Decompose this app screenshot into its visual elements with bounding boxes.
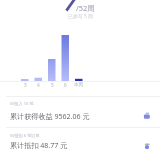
other: Earnings detail xyxy=(143,111,153,121)
staticText: 累计获得收益 9562.06 元 xyxy=(10,111,90,121)
staticText: 5 xyxy=(51,82,54,88)
other: Discount detail xyxy=(143,142,153,152)
staticText: 4 xyxy=(37,82,40,88)
staticText: 累计抵扣 48.77 元 xyxy=(10,140,68,150)
button[interactable]: 已投入 13 笔 xyxy=(0,96,160,127)
staticText: 已抵扣 6 笔订单 xyxy=(10,133,40,139)
staticText: 6 xyxy=(64,82,67,88)
button[interactable]: 已抵扣 6 笔订单 xyxy=(0,127,160,158)
staticText: 已投入 13 笔 xyxy=(10,101,34,107)
staticText: /52周 xyxy=(76,3,95,13)
staticText: 本周 xyxy=(74,82,84,88)
staticText: 已参与 5 周 xyxy=(68,13,93,20)
staticText: 3 xyxy=(24,82,27,88)
